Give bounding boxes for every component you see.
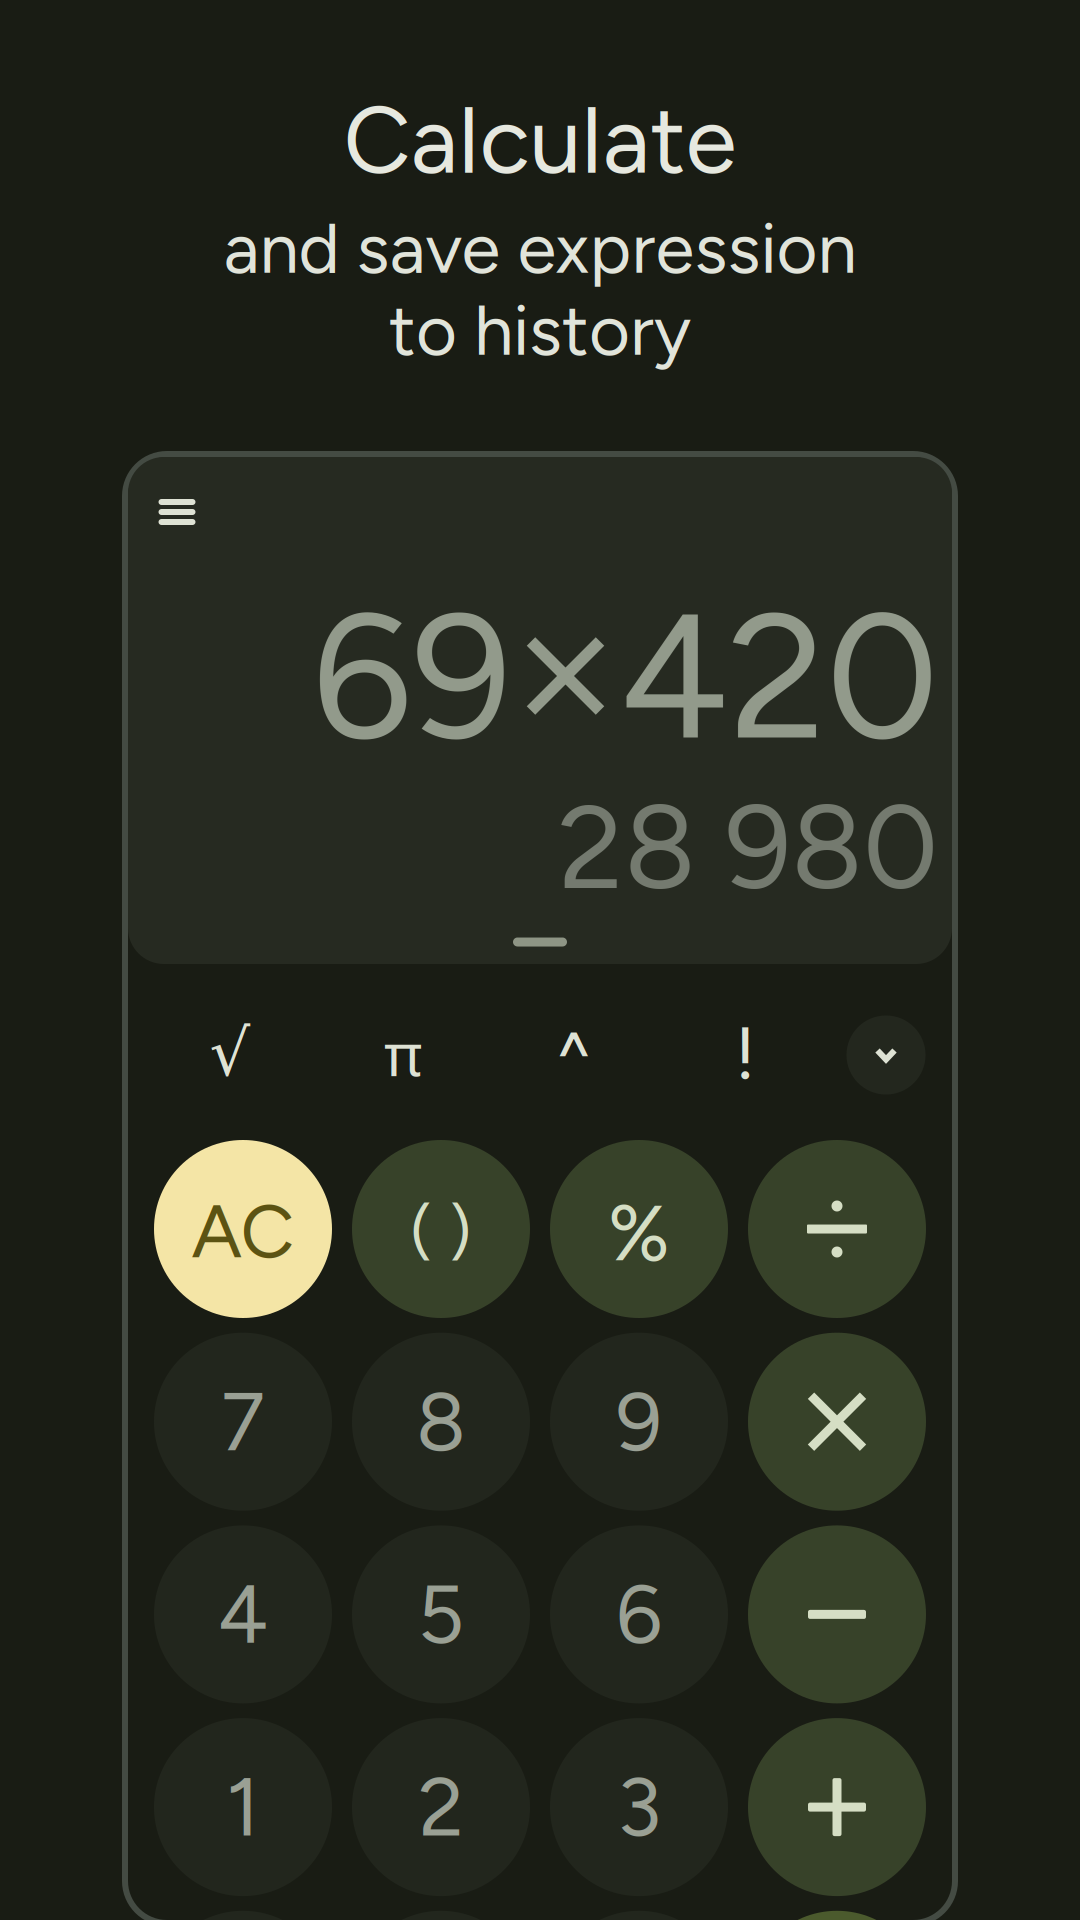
button[interactable]: 4 xyxy=(154,1525,332,1703)
button[interactable]: Menu xyxy=(139,479,214,545)
staticText: AC xyxy=(191,1186,294,1276)
button[interactable]: 6 xyxy=(550,1525,728,1703)
button[interactable]: 7 xyxy=(154,1333,332,1511)
button[interactable]: Minus xyxy=(748,1525,926,1703)
staticText: ! xyxy=(734,1010,755,1096)
button[interactable]: √ xyxy=(170,1003,290,1103)
staticText: to history xyxy=(389,288,691,372)
staticText: 6 xyxy=(616,1566,662,1663)
button[interactable]: , xyxy=(154,1911,332,1920)
button[interactable]: 2 xyxy=(352,1718,530,1896)
button[interactable]: 0 xyxy=(352,1911,530,1920)
button[interactable]: Multiply xyxy=(748,1333,926,1511)
staticText: √ xyxy=(209,1016,250,1090)
button[interactable]: 1 xyxy=(154,1718,332,1896)
button[interactable]: ( ) xyxy=(352,1140,530,1318)
staticText: 1 xyxy=(226,1758,260,1856)
staticText: 8 xyxy=(416,1373,466,1470)
staticText: 4 xyxy=(217,1566,268,1663)
staticText: ( ) xyxy=(410,1194,472,1270)
button[interactable]: ^ xyxy=(514,1008,634,1108)
button[interactable]: π xyxy=(343,1003,463,1103)
staticText: 28 980 xyxy=(558,777,938,917)
button[interactable]: 5 xyxy=(352,1525,530,1703)
staticText: % xyxy=(608,1186,670,1280)
staticText: 420 xyxy=(619,570,939,782)
staticText: 7 xyxy=(221,1373,265,1470)
button[interactable]: 8 xyxy=(352,1333,530,1511)
button[interactable]: More functions xyxy=(846,1015,925,1094)
button[interactable]: Plus xyxy=(748,1718,926,1896)
staticText: π xyxy=(384,1013,422,1093)
staticText: Calculate xyxy=(343,84,736,196)
staticText: 3 xyxy=(617,1758,661,1856)
staticText: 2 xyxy=(418,1758,463,1856)
button[interactable]: AC xyxy=(154,1140,332,1318)
staticText: ^ xyxy=(554,1015,594,1101)
button[interactable]: Delete xyxy=(550,1911,728,1920)
staticText: and save expression xyxy=(223,206,856,290)
button[interactable]: % xyxy=(550,1140,728,1318)
button[interactable]: 9 xyxy=(550,1333,728,1511)
staticText: 5 xyxy=(417,1566,464,1663)
staticText: 9 xyxy=(616,1373,662,1470)
button[interactable]: Divide xyxy=(748,1140,926,1318)
button[interactable]: Equals xyxy=(748,1911,926,1920)
button[interactable]: ! xyxy=(685,1003,805,1103)
staticText: 69 xyxy=(312,570,512,782)
button[interactable]: 3 xyxy=(550,1718,728,1896)
